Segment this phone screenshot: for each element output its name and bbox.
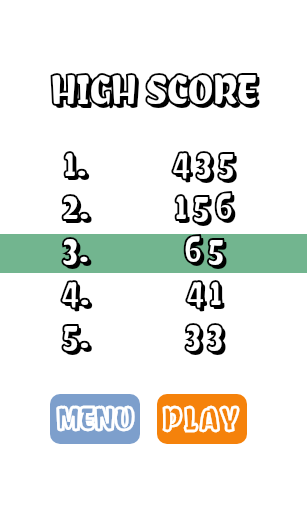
staticText: 4. xyxy=(64,266,94,320)
staticText: 435 xyxy=(172,134,241,188)
staticText: 1. xyxy=(64,134,88,188)
staticText: 156 xyxy=(175,177,239,231)
staticText: 156 xyxy=(175,177,239,231)
staticText: 33 xyxy=(188,309,232,363)
staticText: 435 xyxy=(175,137,244,191)
staticText: 156 xyxy=(178,180,242,234)
staticText: 4. xyxy=(61,263,91,317)
staticText: HIGH SCORE xyxy=(53,67,260,119)
staticText: 41 xyxy=(186,263,228,317)
staticText: 65 xyxy=(184,220,230,274)
staticText: PLAY xyxy=(163,400,242,439)
staticText: 5. xyxy=(62,306,90,360)
staticText: 1. xyxy=(67,137,91,191)
staticText: 41 xyxy=(189,266,231,320)
staticText: MENU xyxy=(57,401,134,437)
staticText: 65 xyxy=(187,223,233,277)
staticText: 65 xyxy=(184,220,230,274)
staticText: HIGH SCORE xyxy=(50,64,257,116)
staticText: 435 xyxy=(172,134,241,188)
staticText: 5. xyxy=(65,309,93,363)
staticText: 2. xyxy=(62,177,90,231)
staticText: 41 xyxy=(186,263,228,317)
staticText: 5. xyxy=(62,306,90,360)
staticText: HIGH SCORE xyxy=(50,64,257,116)
staticText: 2. xyxy=(65,180,93,234)
staticText: 33 xyxy=(185,306,229,360)
staticText: 2. xyxy=(62,177,90,231)
button[interactable]: MENU xyxy=(50,394,140,444)
staticText: 1. xyxy=(64,134,88,188)
staticText: 4. xyxy=(61,263,91,317)
staticText: 3. xyxy=(62,220,90,274)
button[interactable]: PLAY xyxy=(157,394,247,444)
staticText: 3. xyxy=(65,223,93,277)
staticText: 33 xyxy=(185,306,229,360)
staticText: 3. xyxy=(62,220,90,274)
